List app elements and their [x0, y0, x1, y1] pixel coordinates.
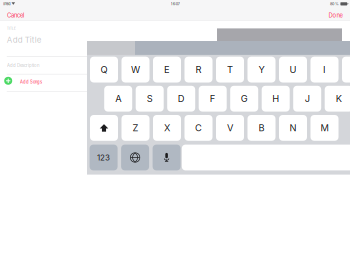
staticText: D	[178, 93, 185, 104]
staticText: M	[320, 122, 328, 134]
button[interactable]: Z	[121, 115, 149, 141]
staticText: Z	[132, 122, 138, 134]
staticText: V	[227, 122, 233, 134]
button[interactable]: X	[153, 115, 181, 141]
button[interactable]: A	[104, 86, 132, 112]
button[interactable]: W	[121, 57, 149, 82]
staticText: Cancel	[7, 12, 24, 19]
staticText: I	[323, 64, 326, 75]
button[interactable]: Y	[247, 57, 275, 82]
staticText: J	[305, 93, 310, 104]
staticText: Add Description	[7, 63, 40, 68]
button[interactable]: Cancel	[7, 12, 24, 19]
button[interactable]: U	[279, 57, 307, 82]
button[interactable]: Done	[329, 12, 343, 19]
button[interactable]: F	[199, 86, 227, 112]
button[interactable]: T	[216, 57, 244, 82]
button[interactable]: R	[184, 57, 212, 82]
button[interactable]: N	[279, 115, 307, 141]
staticText: S	[147, 93, 153, 104]
staticText: iPad	[3, 2, 10, 6]
staticText: Add Title	[7, 35, 42, 45]
button[interactable]: M	[310, 115, 338, 141]
button[interactable]: I	[310, 57, 338, 82]
staticText: N	[289, 122, 296, 134]
staticText: H	[272, 93, 279, 104]
button[interactable]: J	[293, 86, 321, 112]
staticText: Add Songs	[20, 79, 42, 84]
staticText: Q	[100, 64, 107, 75]
button[interactable]: S	[136, 86, 164, 112]
button[interactable]: G	[230, 86, 258, 112]
staticText: 80 %	[330, 2, 339, 6]
staticText: Y	[258, 64, 264, 75]
button[interactable]: K	[325, 86, 350, 112]
button[interactable]: Dictation	[153, 145, 181, 170]
staticText: K	[336, 93, 342, 104]
staticText: U	[289, 64, 296, 75]
button[interactable]: B	[247, 115, 275, 141]
staticText: 123	[97, 153, 110, 162]
staticText: 16:07	[171, 2, 180, 6]
button[interactable]: 123	[90, 145, 118, 170]
button[interactable]: Shift	[90, 115, 118, 141]
button[interactable]: D	[167, 86, 195, 112]
button[interactable]: O	[342, 57, 350, 82]
staticText: E	[164, 64, 170, 75]
staticText: R	[195, 64, 201, 75]
staticText: F	[210, 93, 216, 104]
button[interactable]: Next keyboard	[121, 145, 149, 170]
staticText: C	[195, 122, 202, 134]
staticText: X	[164, 122, 170, 134]
button[interactable]: E	[153, 57, 181, 82]
button[interactable]: V	[216, 115, 244, 141]
staticText: A	[115, 93, 121, 104]
staticText: TITLE	[7, 27, 16, 30]
button[interactable]: Add Songs	[20, 79, 42, 84]
staticText: B	[258, 122, 264, 134]
staticText: T	[227, 64, 233, 75]
button[interactable]: Q	[90, 57, 118, 82]
staticText: W	[131, 64, 140, 75]
staticText: Done	[329, 12, 343, 19]
button[interactable]: H	[262, 86, 290, 112]
staticText: G	[241, 93, 248, 104]
button[interactable]: C	[184, 115, 212, 141]
